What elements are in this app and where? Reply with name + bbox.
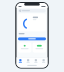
button[interactable]: [18, 37, 46, 40]
button[interactable]: Search: [24, 59, 32, 63]
button[interactable]: Profile: [40, 59, 48, 63]
button[interactable]: Calories: [33, 42, 46, 53]
button[interactable]: Search: [18, 9, 46, 12]
button[interactable]: Steps: [18, 42, 31, 53]
button[interactable]: Home: [16, 59, 24, 63]
button[interactable]: Activity: [32, 59, 40, 63]
